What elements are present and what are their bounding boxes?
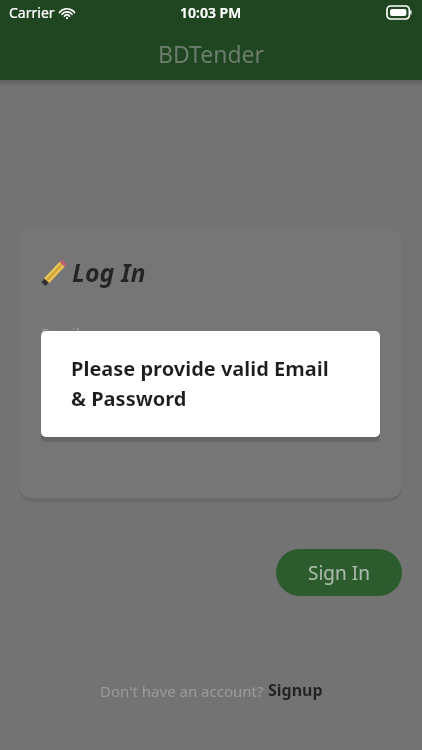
other: Battery (387, 6, 413, 19)
other: Wi-Fi (59, 7, 75, 19)
staticText: Signup (268, 679, 323, 701)
staticText: Don't have an account? (100, 681, 268, 701)
button[interactable]: Password (41, 377, 381, 400)
staticText: Password (41, 379, 109, 399)
staticText: Forgot Password (254, 412, 381, 434)
staticText: Carrier (9, 3, 55, 22)
staticText: BDTender (158, 38, 265, 69)
button[interactable]: Email (41, 321, 381, 344)
staticText: 10:03 PM (180, 3, 242, 22)
staticText: Log In (72, 255, 146, 289)
button[interactable]: Forgot Password (254, 412, 381, 434)
staticText: Email (41, 323, 80, 343)
button[interactable]: Sign In (276, 549, 402, 596)
button[interactable]: Signup (268, 679, 323, 701)
staticText: Sign In (308, 560, 370, 586)
staticText: Please provide valid Email & Password (71, 355, 329, 412)
